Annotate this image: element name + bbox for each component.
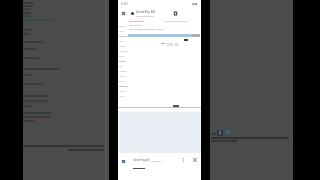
button[interactable]	[118, 24, 129, 29]
button[interactable]: Share on Twitter	[225, 129, 232, 136]
staticText: Opening	[151, 159, 161, 162]
button[interactable]	[118, 54, 129, 59]
button[interactable]	[118, 89, 129, 94]
button[interactable]	[118, 74, 129, 79]
staticText: Measurement	[129, 20, 145, 23]
staticText: f	[219, 130, 221, 136]
staticText: Classification Listening	[164, 20, 188, 23]
button[interactable]	[118, 49, 129, 54]
button[interactable]	[118, 44, 129, 49]
button[interactable]	[118, 84, 129, 89]
staticText: GenerPay Bill	[129, 24, 142, 27]
button[interactable]	[118, 59, 129, 64]
button[interactable]: Dismiss	[191, 156, 199, 164]
staticText: 4:41	[121, 1, 129, 6]
staticText: saurabhsharma.	[136, 14, 155, 17]
button[interactable]	[118, 29, 129, 34]
staticText: GenerPay.pdf	[133, 158, 150, 162]
button[interactable]: Save	[171, 9, 179, 17]
button[interactable]	[118, 94, 129, 99]
button[interactable]: Close	[119, 9, 127, 17]
staticText: ●●	[192, 2, 198, 6]
button[interactable]: Open downloaded file	[119, 157, 127, 165]
staticText: GenerPay Bill	[136, 10, 156, 14]
button[interactable]	[118, 69, 129, 74]
button[interactable]	[118, 39, 129, 44]
button[interactable]	[118, 64, 129, 69]
button[interactable]	[118, 79, 129, 84]
button[interactable]	[118, 34, 129, 39]
staticText: saurabh.sharma@gmail.com view ▾	[129, 28, 164, 31]
button[interactable]: Share on Facebook	[217, 130, 223, 136]
button[interactable]: More options	[179, 156, 187, 164]
